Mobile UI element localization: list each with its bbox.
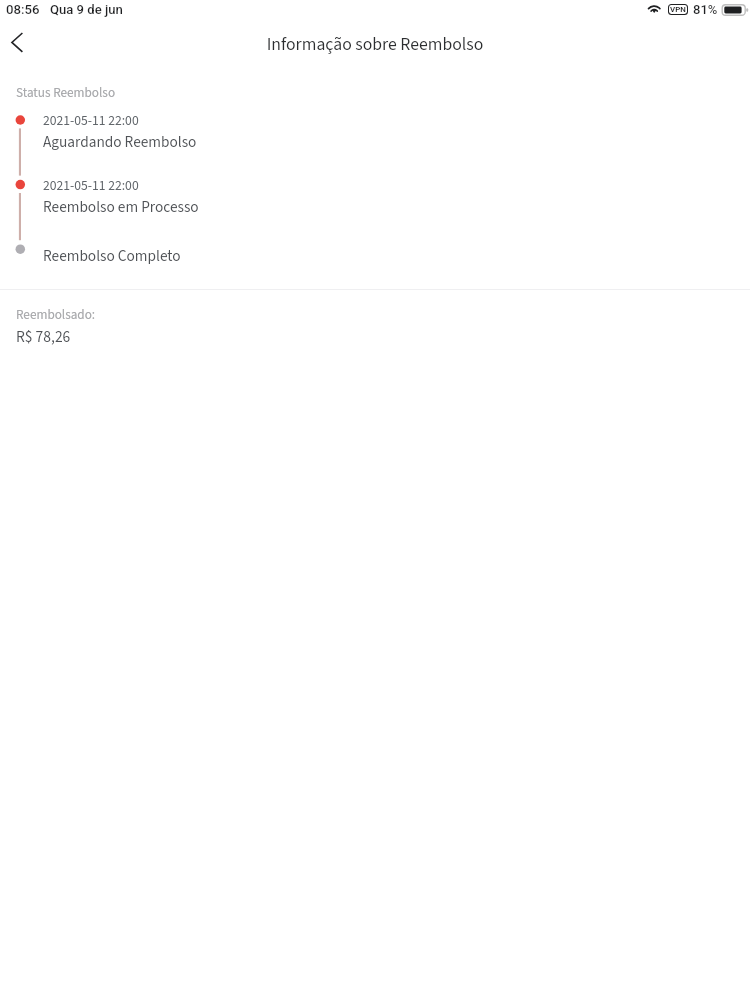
staticText: 81% — [693, 2, 718, 17]
button[interactable]: 2021-05-11 22:00 — [0, 176, 750, 232]
button[interactable]: Reembolso Completo — [0, 245, 750, 275]
staticText: 08:56 — [6, 2, 40, 17]
staticText: 2021-05-11 22:00 — [43, 176, 139, 195]
staticText: VPN — [670, 5, 686, 14]
staticText: Reembolso em Processo — [43, 196, 199, 218]
staticText: Status Reembolso — [16, 83, 116, 102]
staticText: Reembolsado: — [16, 305, 96, 324]
button[interactable]: Back — [0, 20, 44, 64]
button[interactable]: 2021-05-11 22:00 — [0, 111, 750, 167]
staticText: Informação sobre Reembolso — [0, 32, 750, 57]
staticText: Reembolso Completo — [43, 245, 181, 267]
staticText: R$ 78,26 — [16, 326, 71, 348]
staticText: Aguardando Reembolso — [43, 131, 197, 153]
staticText: Qua 9 de jun — [50, 2, 123, 17]
staticText: 2021-05-11 22:00 — [43, 111, 139, 130]
